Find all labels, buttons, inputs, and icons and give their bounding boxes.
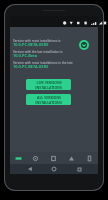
staticText: ALL VERSIONS xyxy=(37,95,61,100)
button[interactable]: LIVE VERSIONS xyxy=(26,79,71,90)
button[interactable]: Devices xyxy=(44,152,62,164)
button[interactable]: More xyxy=(80,152,98,164)
button[interactable]: Recents xyxy=(74,164,84,174)
button[interactable]: Statistics xyxy=(62,152,80,164)
staticText: Version with most installations is xyxy=(13,39,61,43)
staticText: 10.0-PC-Beta xyxy=(13,53,38,57)
staticText: INSTALLATIONS xyxy=(35,85,62,90)
button[interactable]: Dashboard xyxy=(27,152,44,164)
button[interactable]: Home xyxy=(10,152,27,164)
staticText: 10.0-PC-BETA-0XRE xyxy=(13,42,49,46)
button[interactable]: ALL VERSIONS xyxy=(26,94,71,105)
staticText: Version with the last installation is xyxy=(13,50,63,54)
button[interactable]: Back xyxy=(25,164,35,174)
button[interactable]: Home xyxy=(49,164,59,174)
staticText: Version with most installations in the l… xyxy=(13,61,78,65)
button[interactable]: Power xyxy=(79,40,89,50)
staticText: LIVE VERSIONS xyxy=(36,80,62,85)
staticText: 10.0-PC-BETA-0XRE xyxy=(13,64,49,68)
staticText: INSTALLATIONS xyxy=(35,100,62,105)
